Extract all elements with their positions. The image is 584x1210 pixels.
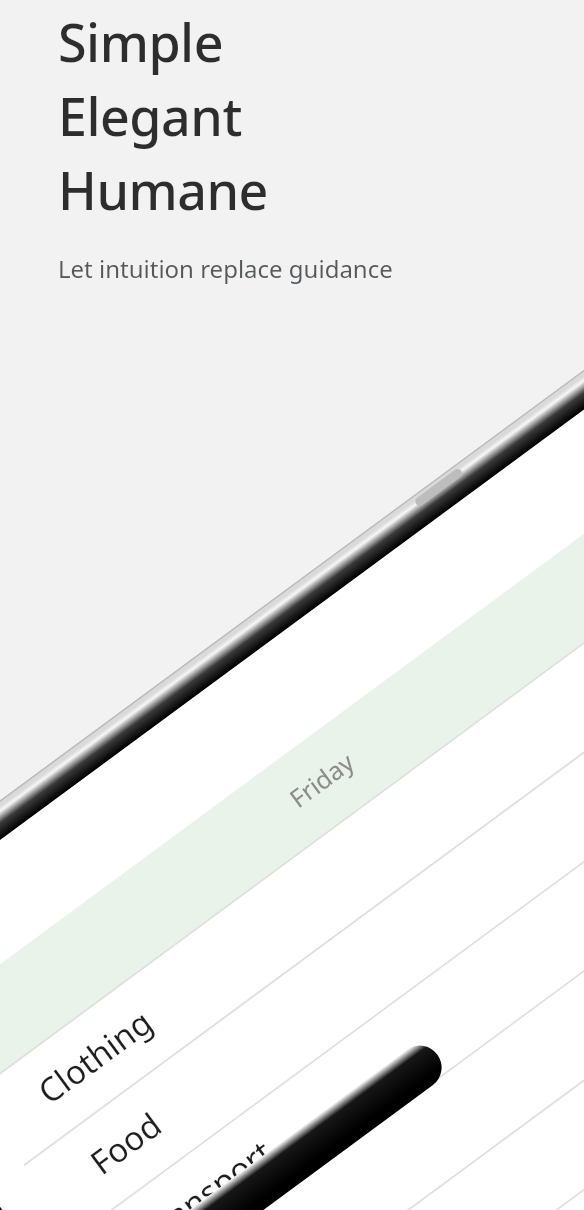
staticText: Simple — [58, 6, 224, 80]
staticText: Elegant — [58, 80, 242, 154]
button[interactable]: Expense list app preview — [0, 0, 584, 1210]
staticText: Humane — [58, 154, 268, 228]
staticText: Let intuition replace guidance — [58, 252, 393, 285]
button[interactable]: Simple — [58, 6, 393, 285]
